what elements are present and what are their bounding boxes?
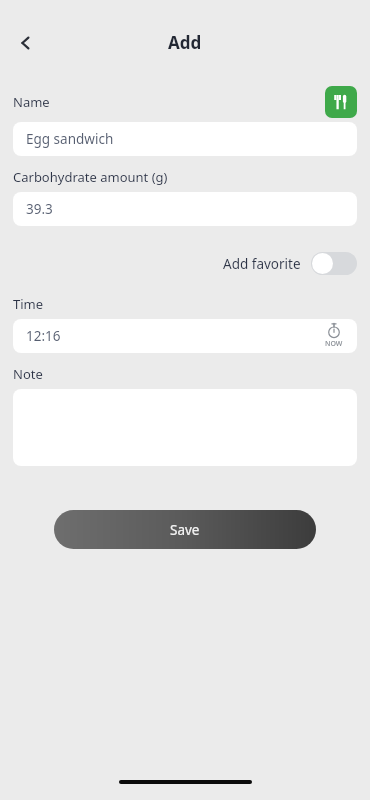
button[interactable]: Add favorite [223, 248, 357, 279]
button[interactable]: Set time to now [319, 321, 349, 351]
staticText: 39.3 [26, 200, 53, 218]
button[interactable]: 39.3 [13, 192, 357, 226]
button[interactable]: Save [54, 510, 316, 549]
button[interactable]: Back [4, 21, 48, 65]
button[interactable]: 12:16 [13, 319, 357, 353]
staticText: Egg sandwich [26, 130, 114, 148]
staticText: 12:16 [26, 327, 61, 345]
button[interactable]: Add favorite toggle [311, 252, 357, 275]
staticText: Add [168, 31, 202, 54]
button[interactable]: Select food [325, 86, 357, 118]
staticText: Time [13, 295, 44, 313]
staticText: Name [13, 93, 50, 111]
staticText: NOW [325, 339, 343, 349]
button[interactable]: Egg sandwich [13, 122, 357, 156]
staticText: Carbohydrate amount (g) [13, 168, 168, 186]
staticText: Add favorite [223, 255, 301, 273]
staticText: Save [170, 521, 200, 539]
staticText: Note [13, 365, 43, 383]
